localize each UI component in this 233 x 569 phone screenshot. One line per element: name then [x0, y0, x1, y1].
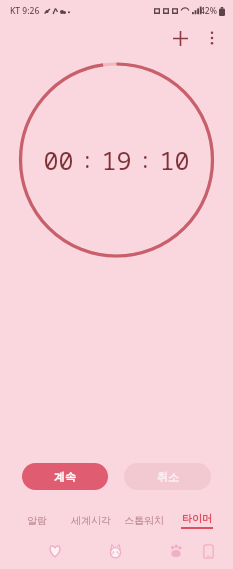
button[interactable]: 취소 [124, 463, 211, 490]
staticText: KT 9:26 [10, 5, 40, 17]
button[interactable]: Cat [104, 540, 126, 562]
staticText: 계속 [54, 470, 76, 484]
button[interactable]: 타이머 [170, 512, 223, 529]
button[interactable]: 알람 [10, 514, 64, 527]
button[interactable]: Add timer [163, 22, 197, 54]
staticText: 알람 [27, 514, 47, 527]
button[interactable]: 세계시각 [64, 514, 117, 527]
button[interactable]: 계속 [22, 463, 108, 490]
staticText: 취소 [157, 470, 179, 484]
button[interactable]: Device [197, 540, 219, 562]
button[interactable]: 스톱워치 [117, 514, 170, 527]
staticText: 세계시각 [71, 514, 111, 527]
button[interactable]: Paw [165, 540, 187, 562]
staticText: 타이머 [182, 512, 212, 525]
staticText: 10 [159, 143, 190, 177]
button[interactable]: More options [197, 23, 227, 53]
staticText: 00 [43, 143, 74, 177]
staticText: : [81, 146, 94, 175]
staticText: 19 [101, 143, 132, 177]
staticText: 스톱워치 [124, 514, 164, 527]
button[interactable]: Favorites [44, 540, 66, 562]
staticText: : [139, 146, 152, 175]
staticText: 42% [200, 5, 217, 17]
